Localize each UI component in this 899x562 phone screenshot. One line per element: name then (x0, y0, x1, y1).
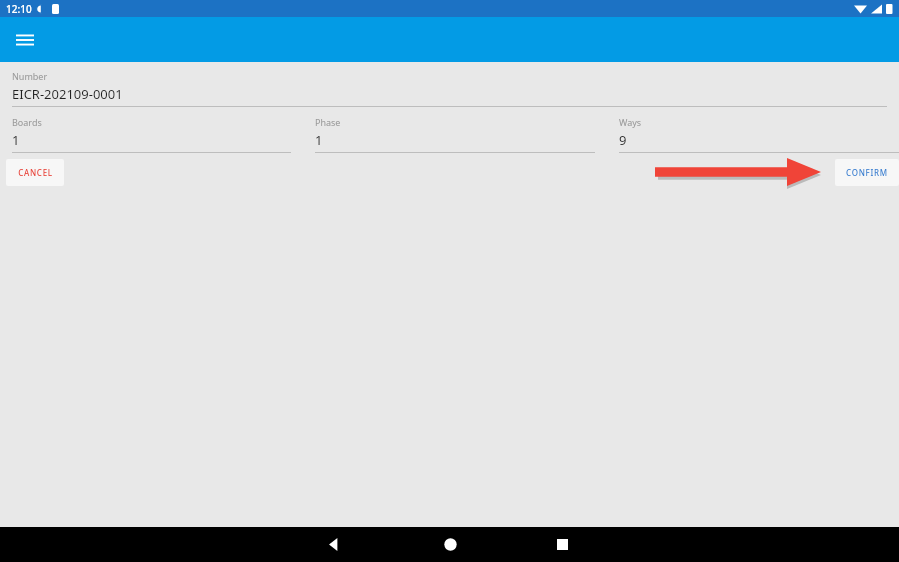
staticText: Phase (315, 116, 341, 128)
button[interactable]: Phase (303, 107, 595, 153)
button[interactable]: Boards (0, 107, 291, 153)
staticText: 9 (619, 131, 627, 149)
button[interactable]: Ways (607, 107, 899, 153)
staticText: Ways (619, 116, 642, 128)
button[interactable]: CANCEL (6, 159, 64, 186)
button[interactable]: Home (426, 527, 474, 562)
button[interactable]: Recent apps (538, 527, 586, 562)
button[interactable]: Back (310, 527, 358, 562)
staticText: EICR-202109-0001 (12, 85, 123, 103)
staticText: 1 (315, 131, 323, 149)
button[interactable]: Number (0, 62, 899, 107)
button[interactable]: CONFIRM (835, 159, 899, 186)
staticText: 1 (12, 131, 20, 149)
staticText: CANCEL (18, 167, 53, 178)
staticText: Boards (12, 116, 42, 128)
staticText: CONFIRM (846, 167, 888, 178)
button[interactable]: Open navigation menu (10, 25, 40, 55)
staticText: Number (12, 70, 48, 82)
staticText: 12:10 (6, 2, 32, 16)
